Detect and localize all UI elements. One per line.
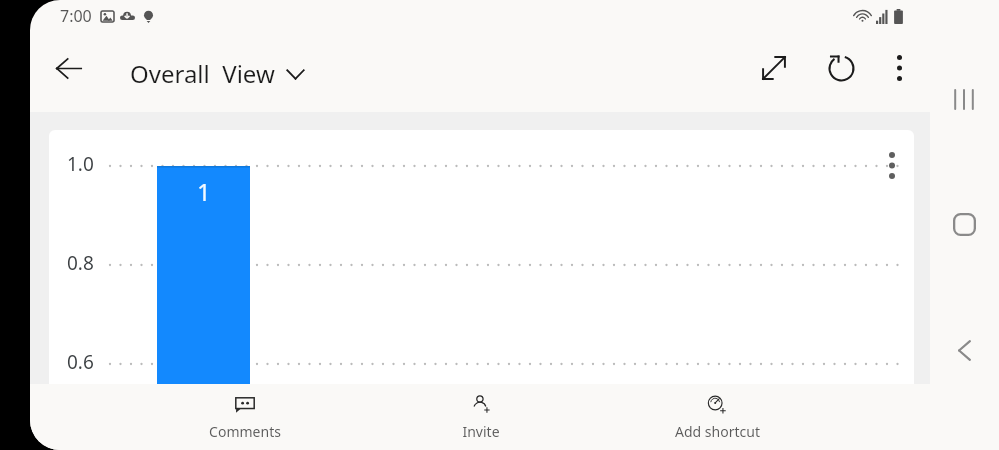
button[interactable]: Expand xyxy=(750,44,798,92)
button[interactable]: Invite xyxy=(363,384,599,441)
button[interactable]: Refresh xyxy=(817,44,865,92)
staticText: 0.8 xyxy=(67,250,94,276)
button[interactable]: Overall View xyxy=(126,51,309,96)
button[interactable]: Chart options xyxy=(876,149,908,181)
button[interactable]: More options xyxy=(875,44,923,92)
staticText: 7:00 xyxy=(60,5,92,27)
button[interactable]: Comments xyxy=(127,384,363,441)
staticText: 0.6 xyxy=(67,349,94,375)
button[interactable]: Add shortcut xyxy=(599,384,835,441)
staticText: Add shortcut xyxy=(675,422,760,441)
button[interactable]: Home xyxy=(940,200,988,248)
button[interactable]: Back xyxy=(940,326,988,374)
button[interactable]: Back xyxy=(45,44,93,92)
button[interactable]: Recent apps xyxy=(940,75,988,123)
staticText: Invite xyxy=(462,422,500,441)
staticText: Comments xyxy=(209,422,281,441)
staticText: 1.0 xyxy=(67,151,94,177)
staticText: 1 xyxy=(197,175,211,208)
staticText: Overall View xyxy=(130,57,275,90)
